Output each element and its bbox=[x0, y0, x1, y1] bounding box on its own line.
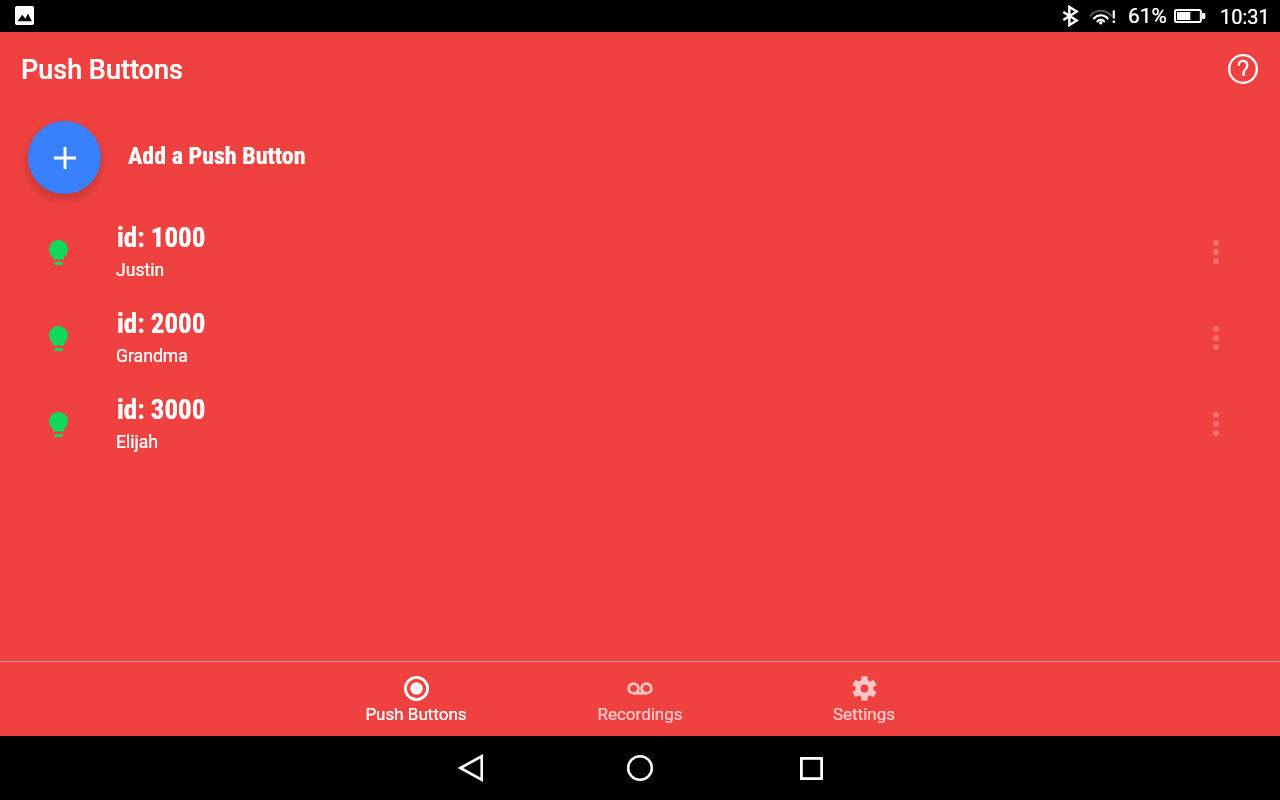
staticText: Justin bbox=[116, 260, 165, 281]
staticText: Grandma bbox=[116, 346, 188, 367]
button[interactable]: Home bbox=[565, 736, 715, 800]
staticText: id: 1000 bbox=[117, 222, 206, 254]
staticText: 61% bbox=[1128, 4, 1167, 29]
staticText: id: 2000 bbox=[117, 308, 206, 340]
button[interactable]: Help bbox=[1219, 45, 1267, 93]
staticText: 10:31 bbox=[1220, 5, 1270, 28]
button[interactable]: id: 2000 bbox=[0, 295, 1280, 381]
button[interactable]: Back bbox=[396, 736, 546, 800]
staticText: Push Buttons bbox=[21, 54, 183, 86]
staticText: Recordings bbox=[528, 704, 752, 724]
button[interactable]: Settings bbox=[752, 662, 976, 737]
button[interactable]: id: 3000 bbox=[0, 381, 1280, 467]
staticText: Elijah bbox=[116, 432, 159, 453]
staticText: Add a Push Button bbox=[128, 142, 306, 170]
staticText: Settings bbox=[752, 704, 976, 724]
button[interactable]: Add a Push Button bbox=[0, 113, 1280, 201]
button[interactable]: More options bbox=[1192, 295, 1240, 381]
button[interactable]: Recordings bbox=[528, 662, 752, 737]
button[interactable]: More options bbox=[1192, 209, 1240, 295]
button[interactable]: More options bbox=[1192, 381, 1240, 467]
staticText: id: 3000 bbox=[117, 394, 206, 426]
staticText: Push Buttons bbox=[304, 704, 528, 724]
button[interactable]: Recents bbox=[736, 736, 886, 800]
button[interactable]: id: 1000 bbox=[0, 209, 1280, 295]
button[interactable]: Push Buttons bbox=[304, 662, 528, 737]
